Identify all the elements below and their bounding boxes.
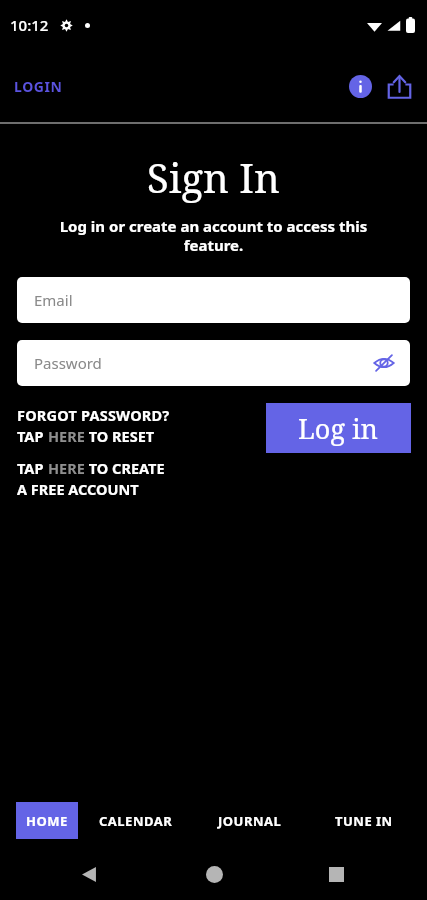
button[interactable]: Recent apps	[319, 857, 353, 891]
button[interactable]: Home	[197, 857, 231, 891]
staticText: JOURNAL	[218, 812, 282, 830]
staticText: Log in	[298, 410, 379, 447]
staticText: TUNE IN	[335, 812, 393, 830]
staticText: Password	[34, 353, 102, 373]
button[interactable]: Log in	[266, 403, 411, 453]
button[interactable]: JOURNAL	[193, 812, 307, 830]
staticText: FORGOT PASSWORD?	[17, 405, 170, 425]
staticText: HERE	[48, 458, 85, 478]
staticText: A FREE ACCOUNT	[17, 479, 139, 499]
button[interactable]: LOGIN	[12, 71, 65, 102]
staticText: TAP	[17, 426, 48, 446]
button[interactable]: HOME	[16, 802, 78, 839]
staticText: Sign In	[147, 150, 280, 204]
staticText: HERE	[48, 426, 85, 446]
staticText: TAP	[17, 458, 48, 478]
staticText: Log in or create an account to access th…	[40, 216, 387, 255]
button[interactable]: CALENDAR	[78, 812, 193, 830]
staticText: CALENDAR	[99, 812, 173, 830]
staticText: TO CREATE	[85, 458, 165, 478]
staticText: Email	[34, 290, 73, 310]
button[interactable]: Information	[343, 69, 377, 103]
button[interactable]: Share	[381, 68, 417, 104]
button[interactable]: Show password	[369, 348, 399, 378]
button[interactable]: Password	[17, 340, 410, 386]
button[interactable]: FORGOT PASSWORD?	[17, 405, 170, 446]
staticText: HOME	[26, 812, 68, 830]
button[interactable]: Back	[72, 857, 106, 891]
staticText: TO RESET	[85, 426, 155, 446]
staticText: 10:12	[10, 15, 49, 35]
button[interactable]: TUNE IN	[307, 812, 421, 830]
button[interactable]: TAP	[17, 458, 165, 499]
staticText: LOGIN	[14, 77, 63, 96]
button[interactable]: Email	[17, 277, 410, 323]
